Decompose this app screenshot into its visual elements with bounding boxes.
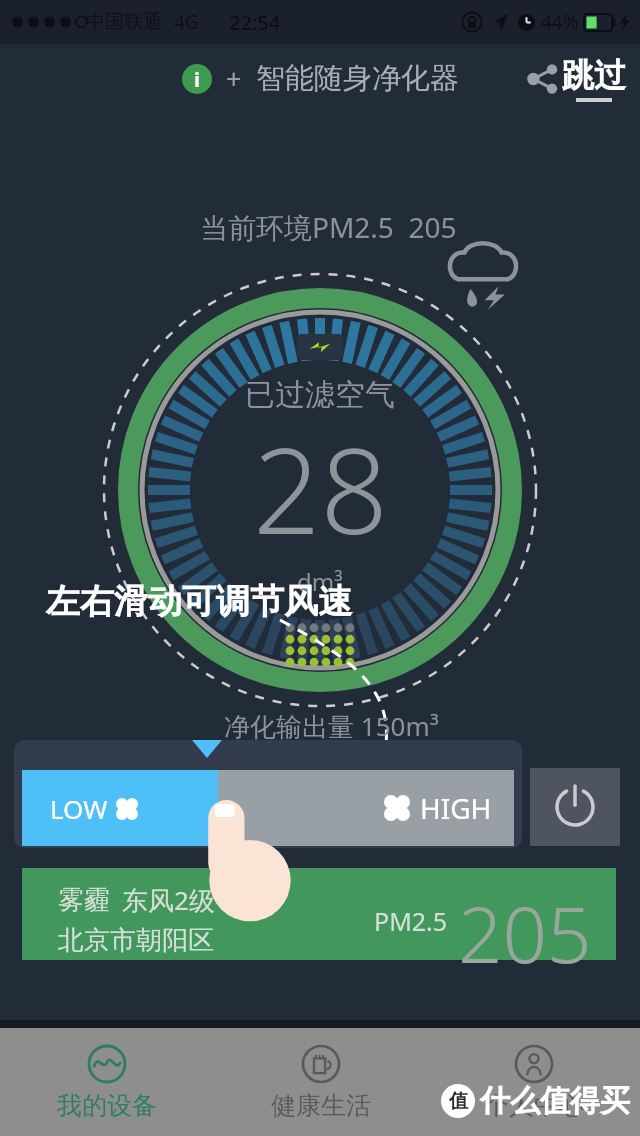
staticText: + [226,60,242,97]
staticText: 智能随身净化器 [256,60,459,97]
staticText: 雾霾 [58,884,110,917]
staticText: 净化输出量 150m³ [224,708,439,744]
button[interactable]: 个人中心 [427,1028,640,1136]
staticText: 什么值得买 [480,1082,630,1120]
staticText: 44% [541,9,579,35]
staticText: 跳过 [562,55,626,95]
staticText: 205 [458,880,592,972]
button[interactable]: 雾霾 [22,868,616,960]
staticText: 26° [229,883,270,918]
staticText: 当前环境PM2.5 205 [200,208,457,246]
staticText: 4G [174,9,199,35]
staticText: 东风2级 [122,882,215,918]
button[interactable]: HIGH [218,770,514,846]
button[interactable]: 我的设备 [0,1028,214,1136]
staticText: 28 [253,408,388,569]
staticText: LOW [50,791,108,826]
staticText: 个人中心 [484,1090,584,1121]
staticText: i [194,66,200,93]
button[interactable]: 健康生活 [214,1028,427,1136]
staticText: 中国联通 [86,10,162,34]
staticText: 已过滤空气 [245,376,395,414]
staticText: PM2.5 [374,904,448,938]
button[interactable]: LOW [22,770,218,846]
staticText: 22:54 [229,9,281,36]
staticText: 北京市朝阳区 [58,924,214,957]
staticText: 值 [449,1089,468,1113]
button[interactable]: 跳过 [562,55,626,102]
button[interactable]: Info [182,64,212,94]
staticText: 左右滑动可调节风速 [46,580,352,623]
staticText: dm³ [297,565,343,598]
staticText: HIGH [420,789,492,827]
button[interactable]: Power [530,768,620,846]
staticText: 我的设备 [57,1090,157,1121]
staticText: 健康生活 [271,1090,371,1121]
button[interactable]: Share [524,60,562,98]
